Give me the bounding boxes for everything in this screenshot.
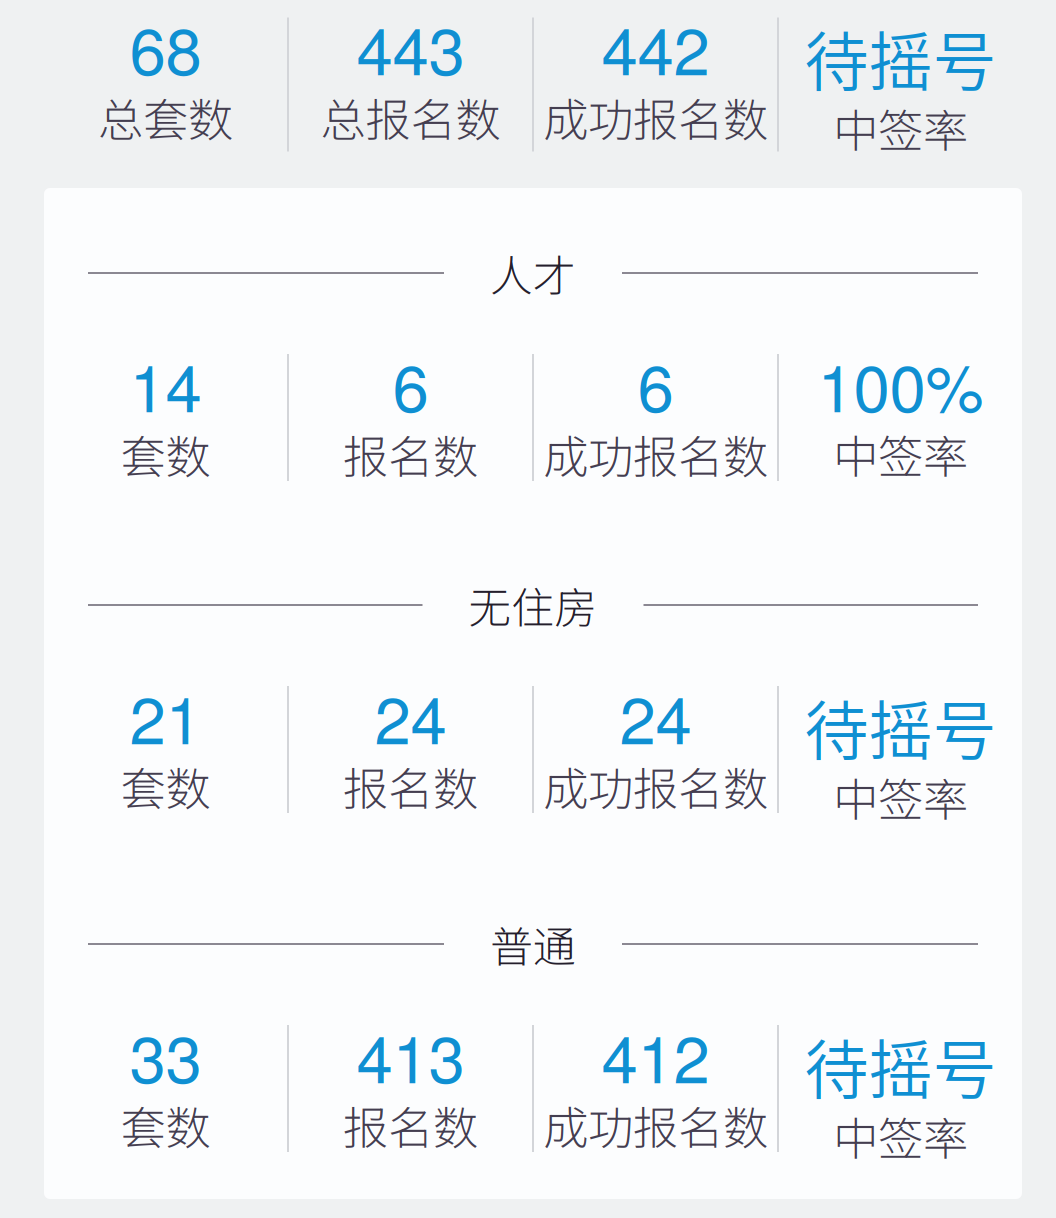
staticText: 中签率 [833,1103,968,1169]
staticText: 68 [129,0,201,94]
staticText: 成功报名数 [543,753,768,819]
staticText: 成功报名数 [543,84,768,150]
button[interactable]: 待摇号 [779,14,1022,179]
button[interactable]: 待摇号 [779,1022,1022,1187]
button[interactable]: 413 [289,1022,532,1187]
staticText: 成功报名数 [543,1092,768,1158]
button[interactable]: 6 [289,351,532,516]
button[interactable]: 待摇号 [779,683,1022,848]
staticText: 待摇号 [804,11,996,103]
staticText: 待摇号 [804,1019,996,1111]
button[interactable]: 24 [289,683,532,848]
staticText: 报名数 [343,1092,478,1158]
button[interactable]: 100% [779,351,1022,516]
staticText: 中签率 [833,421,968,487]
staticText: 无住房 [468,574,597,636]
staticText: 6 [637,337,673,431]
staticText: 人才 [490,242,576,304]
staticText: 总套数 [98,84,233,150]
staticText: 14 [129,337,201,431]
staticText: 21 [129,669,201,763]
button[interactable]: 6 [534,351,777,516]
staticText: 套数 [120,1092,210,1158]
staticText: 6 [392,337,428,431]
button[interactable]: 21 [44,683,287,848]
staticText: 442 [601,0,709,94]
staticText: 待摇号 [804,680,996,772]
staticText: 中签率 [833,95,968,161]
staticText: 成功报名数 [543,421,768,487]
staticText: 套数 [120,421,210,487]
staticText: 报名数 [343,753,478,819]
button[interactable]: 33 [44,1022,287,1187]
staticText: 413 [356,1008,464,1102]
staticText: 中签率 [833,764,968,830]
button[interactable]: 443 [289,14,532,179]
staticText: 33 [129,1008,201,1102]
staticText: 24 [374,669,446,763]
button[interactable]: 442 [534,14,777,179]
staticText: 普通 [490,913,576,975]
staticText: 412 [601,1008,709,1102]
staticText: 套数 [120,753,210,819]
button[interactable]: 412 [534,1022,777,1187]
button[interactable]: 14 [44,351,287,516]
button[interactable]: 24 [534,683,777,848]
staticText: 443 [356,0,464,94]
staticText: 总报名数 [320,84,500,150]
button[interactable]: 68 [44,14,287,179]
staticText: 100% [817,337,983,431]
staticText: 报名数 [343,421,478,487]
staticText: 24 [619,669,691,763]
